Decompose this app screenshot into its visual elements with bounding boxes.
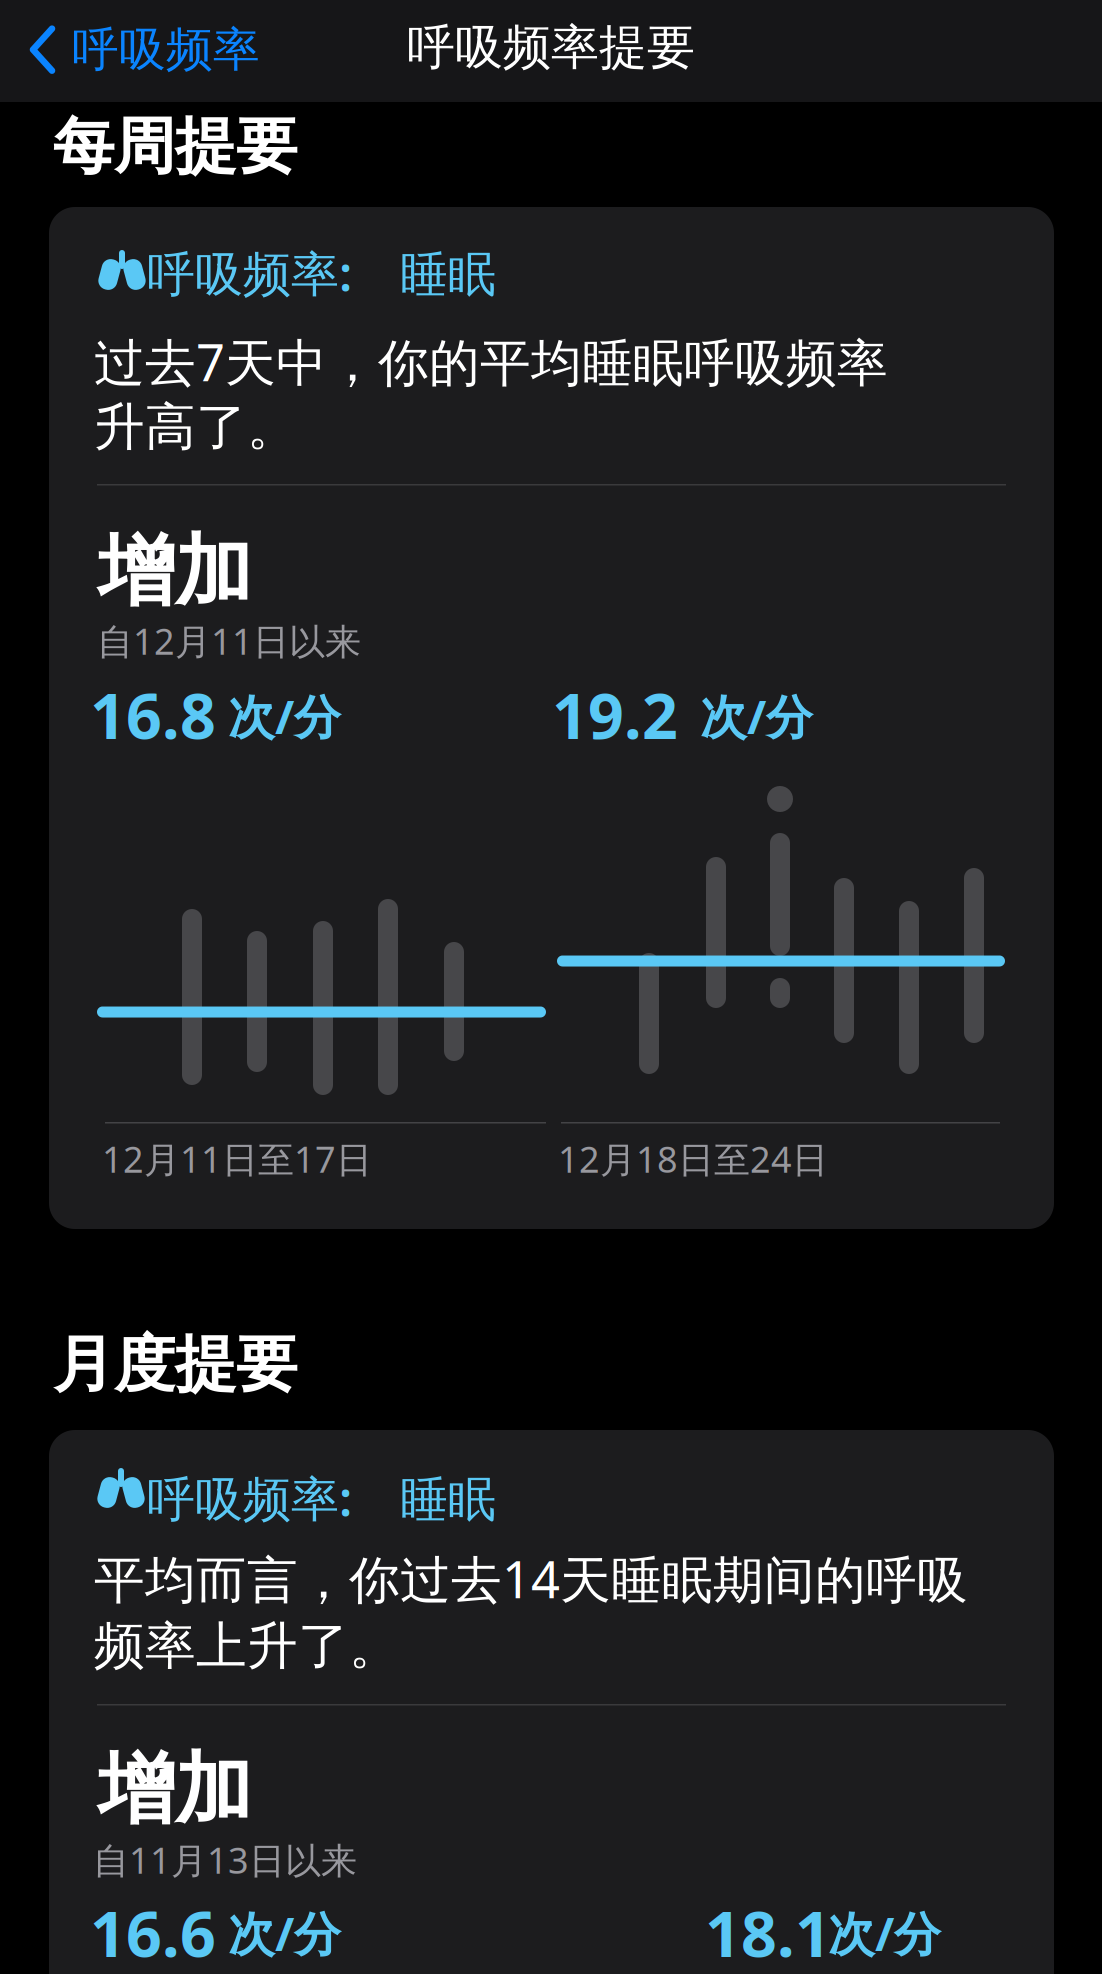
staticText: 16.6 (90, 1891, 216, 1974)
staticText: 次/分 (228, 1902, 341, 1964)
staticText: 18.1 (705, 1891, 831, 1974)
staticText: 呼吸频率: 睡眠 (147, 1466, 496, 1530)
staticText: 12月18日至24日 (558, 1135, 828, 1183)
staticText: 16.8 (90, 673, 216, 756)
staticText: 平均而言，你过去14天睡眠期间的呼吸 (94, 1545, 968, 1612)
staticText: 次/分 (228, 685, 341, 747)
staticText: 每周提要 (53, 109, 297, 184)
staticText: 呼吸频率: 睡眠 (147, 241, 496, 305)
staticText: 升高了。 (94, 396, 298, 458)
staticText: 过去7天中，你的平均睡眠呼吸频率 (94, 328, 888, 395)
staticText: 19.2 (552, 673, 678, 756)
staticText: 呼吸频率 (72, 21, 260, 78)
staticText: 增加 (98, 1742, 252, 1837)
staticText: 月度提要 (53, 1327, 297, 1402)
staticText: 自12月11日以来 (97, 617, 361, 665)
staticText: 12月11日至17日 (102, 1135, 372, 1183)
staticText: 频率上升了。 (94, 1615, 400, 1677)
button[interactable]: 返回 呼吸频率 (28, 21, 260, 78)
staticText: 次/分 (828, 1902, 941, 1964)
staticText: 呼吸频率提要 (407, 18, 695, 77)
staticText: 次/分 (700, 685, 813, 747)
staticText: 自11月13日以来 (93, 1836, 357, 1884)
staticText: 增加 (98, 524, 252, 619)
